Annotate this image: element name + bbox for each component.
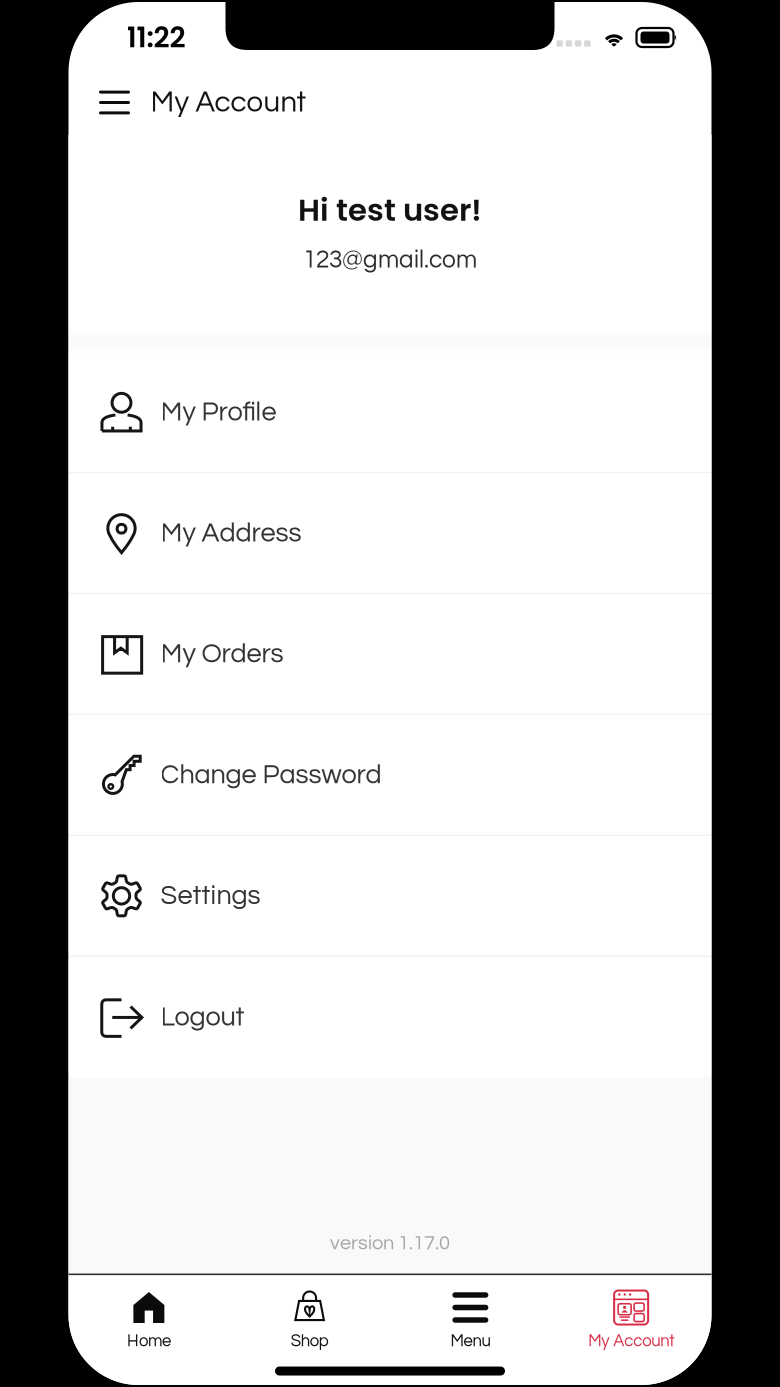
staticText: 11:22 <box>126 18 185 57</box>
button[interactable]: Settings <box>68 836 711 956</box>
staticText: version 1.17.0 <box>330 1233 450 1253</box>
staticText: Hi test user! <box>298 188 482 231</box>
staticText: 123@gmail.com <box>303 247 477 272</box>
staticText: Change Password <box>160 761 381 789</box>
staticText: My Account <box>150 87 306 118</box>
staticText: Settings <box>160 882 260 910</box>
button[interactable]: Shop <box>229 1275 390 1354</box>
staticText: Shop <box>291 1332 329 1350</box>
staticText: My Profile <box>160 398 276 426</box>
staticText: Menu <box>450 1332 490 1350</box>
staticText: My Account <box>588 1332 674 1350</box>
staticText: My Orders <box>160 640 283 668</box>
staticText: Home <box>127 1332 171 1350</box>
button[interactable]: Menu <box>390 1275 551 1354</box>
button[interactable]: My Account <box>551 1275 712 1354</box>
button[interactable]: My Orders <box>68 594 711 714</box>
button[interactable]: Home <box>68 1275 229 1354</box>
staticText: Logout <box>160 1003 244 1031</box>
staticText: My Address <box>160 519 301 547</box>
button[interactable]: My Profile <box>68 352 711 472</box>
button[interactable]: My Address <box>68 473 711 593</box>
button[interactable]: Open navigation menu <box>94 82 134 122</box>
button[interactable]: Logout <box>68 957 711 1077</box>
button[interactable]: Change Password <box>68 715 711 835</box>
